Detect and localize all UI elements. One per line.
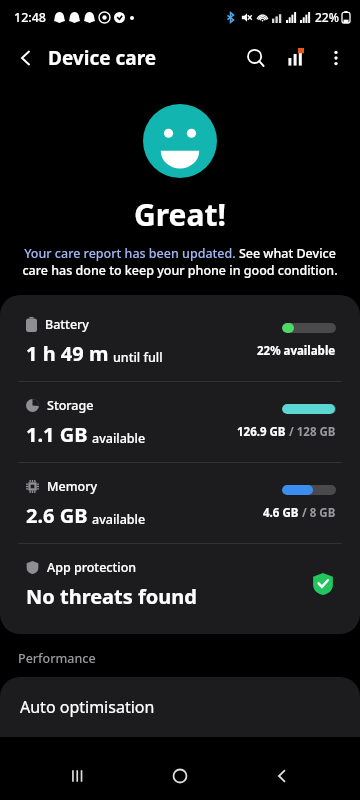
button[interactable]: Auto optimisation (0, 677, 360, 737)
staticText: 2.6 GB (26, 502, 88, 529)
button[interactable]: Statistics (276, 38, 316, 78)
staticText: 4.6 GB (263, 505, 299, 521)
staticText: 126.9 GB (237, 424, 286, 440)
staticText: Memory (47, 478, 98, 495)
button[interactable]: Storage (0, 382, 360, 462)
staticText: 1.1 GB (26, 421, 88, 448)
button[interactable]: Memory (0, 463, 360, 543)
staticText: Great! (0, 194, 360, 235)
button[interactable]: Battery (0, 301, 360, 381)
button[interactable]: More options (316, 38, 356, 78)
staticText: App protection (47, 559, 137, 576)
staticText: Battery (45, 316, 89, 333)
staticText: 12:48 (14, 9, 47, 26)
staticText: Storage (47, 397, 94, 414)
staticText: 22% available (257, 343, 336, 359)
staticText: 22% (315, 9, 339, 25)
staticText: Performance (18, 650, 96, 667)
staticText: available (92, 430, 146, 447)
button[interactable]: Home (156, 752, 204, 800)
button[interactable]: Search (236, 38, 276, 78)
staticText: Auto optimisation (20, 696, 155, 718)
button[interactable]: Back (258, 752, 306, 800)
button[interactable]: Recent apps (54, 752, 102, 800)
staticText: Device care (48, 45, 157, 71)
staticText: No threats found (26, 583, 197, 610)
staticText: / 8 GB (299, 505, 336, 521)
staticText: until full (113, 349, 163, 366)
button[interactable]: App protection (0, 544, 360, 624)
button[interactable]: Back (6, 38, 46, 78)
staticText: / 128 GB (286, 424, 336, 440)
staticText: 1 h 49 m (26, 340, 109, 367)
staticText: Your care report has been updated. See w… (20, 245, 340, 279)
staticText: available (92, 511, 146, 528)
